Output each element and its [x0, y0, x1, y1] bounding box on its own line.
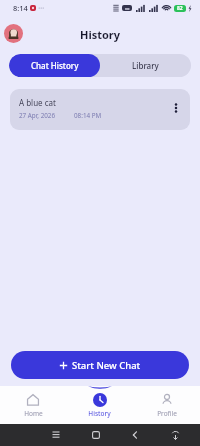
button[interactable]: Profile avatar: [4, 24, 23, 43]
staticText: Profile: [157, 409, 177, 418]
button[interactable]: Chat History: [9, 54, 100, 77]
staticText: History: [80, 27, 121, 42]
button[interactable]: Home: [0, 386, 66, 424]
button[interactable]: Recent apps: [49, 428, 63, 442]
button[interactable]: Back: [128, 428, 142, 442]
button[interactable]: Home: [89, 428, 103, 442]
button[interactable]: Profile: [133, 386, 200, 424]
staticText: Chat History: [31, 60, 79, 71]
staticText: Start New Chat: [72, 359, 141, 372]
staticText: Home: [24, 409, 43, 418]
button[interactable]: Library: [100, 54, 191, 77]
staticText: A blue cat: [19, 97, 56, 108]
button[interactable]: History: [66, 386, 133, 424]
staticText: 27 Apr, 2026: [19, 111, 56, 120]
staticText: 8:14: [13, 3, 28, 13]
staticText: Library: [132, 60, 159, 71]
button[interactable]: Start New Chat: [11, 351, 189, 379]
staticText: 08:14 PM: [74, 111, 102, 120]
staticText: vo: [125, 6, 130, 11]
button[interactable]: Hide keyboard: [168, 428, 182, 442]
button[interactable]: A blue cat: [10, 89, 190, 130]
button[interactable]: More options: [169, 101, 183, 115]
staticText: History: [88, 409, 111, 418]
staticText: 82: [177, 5, 183, 12]
